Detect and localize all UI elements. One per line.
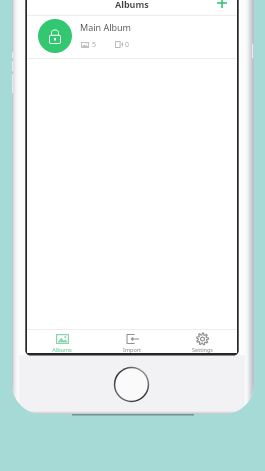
staticText: 0	[125, 40, 130, 50]
staticText: Albums	[115, 0, 149, 10]
button[interactable]: Add album	[211, 0, 233, 16]
button[interactable]: Settings	[167, 329, 237, 353]
staticText: Main Album	[80, 21, 132, 33]
button[interactable]: Home	[113, 366, 150, 403]
staticText: Albums	[52, 346, 72, 353]
button[interactable]: Import	[97, 329, 167, 353]
staticText: Settings	[192, 346, 213, 353]
staticText: Import	[123, 346, 141, 353]
button[interactable]: Albums	[27, 329, 97, 353]
button[interactable]: Main Album	[27, 16, 237, 59]
staticText: 5	[92, 40, 97, 50]
